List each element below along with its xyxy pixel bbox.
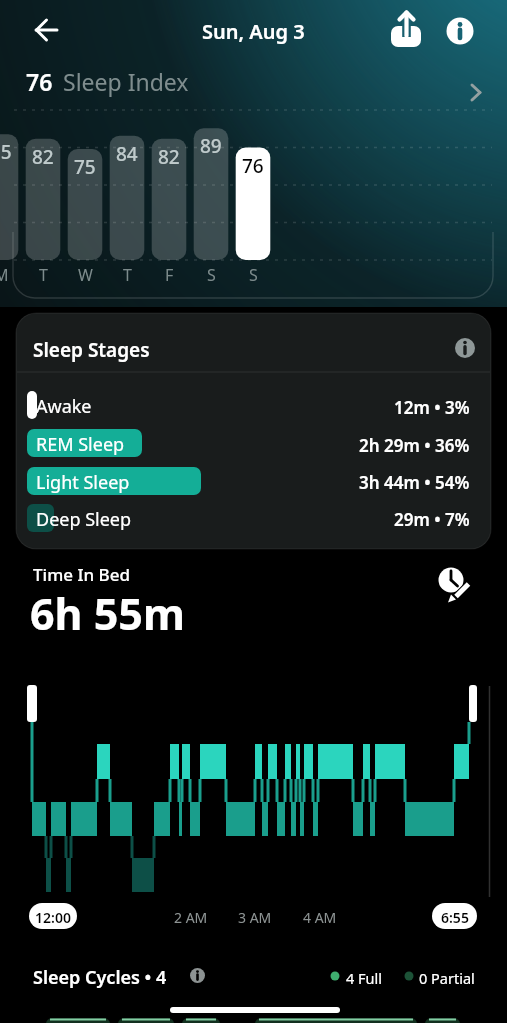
staticText: Sleep Index — [63, 66, 189, 97]
staticText: 82 — [32, 144, 54, 170]
staticText: 12m • 3% — [394, 396, 470, 419]
staticText: 84 — [116, 141, 138, 167]
staticText: W — [78, 264, 93, 286]
staticText: F — [165, 264, 174, 286]
staticText: 4 AM — [303, 908, 337, 927]
staticText: 3h 44m • 54% — [359, 471, 470, 494]
staticText: 76 — [242, 153, 264, 179]
staticText: 29m • 7% — [394, 508, 470, 531]
staticText: 4 Full — [346, 968, 383, 988]
staticText: Sleep Stages — [33, 337, 150, 363]
staticText: 89 — [200, 133, 222, 159]
staticText: 82 — [158, 144, 180, 170]
staticText: S — [207, 264, 216, 286]
staticText: 0 Partial — [419, 968, 475, 988]
staticText: 3 AM — [238, 908, 272, 927]
staticText: 12:00 — [35, 908, 71, 927]
staticText: 2h 29m • 36% — [359, 434, 470, 457]
staticText: S — [249, 264, 258, 286]
staticText: Sun, Aug 3 — [202, 18, 305, 45]
staticText: REM Sleep — [36, 432, 125, 457]
staticText: 6h 55m — [30, 584, 185, 643]
staticText: T — [123, 264, 132, 286]
staticText: Light Sleep — [36, 470, 130, 495]
staticText: Time In Bed — [33, 563, 130, 586]
staticText: 85 — [0, 139, 12, 165]
staticText: M — [0, 264, 9, 286]
staticText: T — [39, 264, 48, 286]
staticText: Awake — [36, 394, 92, 419]
staticText: 75 — [74, 154, 96, 180]
staticText: Deep Sleep — [36, 507, 132, 532]
staticText: Sleep Cycles • 4 — [33, 965, 167, 990]
staticText: 76 — [26, 66, 53, 97]
staticText: 6:55 — [441, 908, 469, 927]
staticText: 2 AM — [174, 908, 208, 927]
